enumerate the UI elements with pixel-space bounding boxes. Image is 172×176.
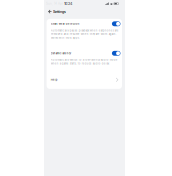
button[interactable]: Toggle: [112, 21, 120, 26]
button[interactable]: Dynamic latency: [47, 51, 122, 56]
staticText: Smart wear detection: [51, 22, 80, 25]
staticText: Help: [51, 78, 58, 81]
staticText: Sun, 14 Apr: [46, 2, 63, 5]
button[interactable]: Toggle: [112, 51, 120, 56]
staticText: Dynamic latency: [51, 52, 71, 55]
button[interactable]: Smart wear detection: [47, 21, 122, 26]
staticText: Automatically switch to a low-latency au…: [51, 58, 118, 65]
staticText: 10:24: [64, 1, 72, 6]
button[interactable]: Back to Settings: [48, 8, 67, 15]
staticText: Automatically pause playback when earpho…: [51, 29, 119, 39]
button[interactable]: Help: [47, 77, 122, 82]
staticText: Settings: [53, 9, 66, 14]
